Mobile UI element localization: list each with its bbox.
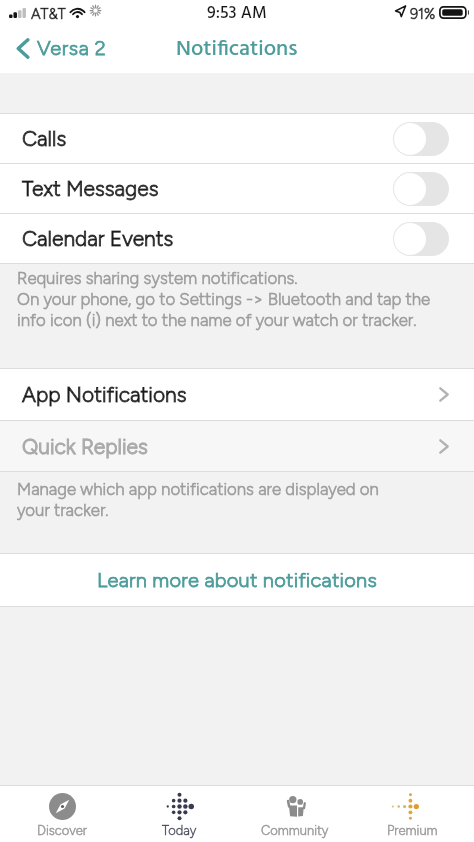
staticText: 91% <box>410 5 436 22</box>
button[interactable]: Calendar Events <box>0 214 474 263</box>
staticText: Requires sharing system notifications. O… <box>17 268 431 330</box>
button[interactable]: Versa 2 <box>0 31 119 65</box>
staticText: Notifications <box>176 32 298 67</box>
staticText: Requires sharing system notifications. O… <box>17 268 431 330</box>
staticText: AT&T <box>31 5 66 22</box>
staticText: Versa 2 <box>37 36 107 60</box>
staticText: AT&T <box>31 5 66 22</box>
staticText: Manage which app notifications are displ… <box>17 479 379 520</box>
staticText: Community <box>261 823 329 839</box>
staticText: Premium <box>387 823 438 839</box>
staticText: Text Messages <box>22 176 159 201</box>
staticText: Learn more about notifications <box>97 568 378 592</box>
button[interactable]: Text Messages <box>0 164 474 213</box>
staticText: Manage which app notifications are displ… <box>17 479 379 520</box>
staticText: 91% <box>410 5 436 22</box>
staticText: Calendar Events <box>22 226 174 251</box>
staticText: Calls <box>22 126 67 151</box>
staticText: Community <box>261 823 329 839</box>
staticText: App Notifications <box>22 382 187 407</box>
staticText: Today <box>162 823 197 839</box>
staticText: Text Messages <box>22 176 159 201</box>
staticText: App Notifications <box>22 382 187 407</box>
staticText: Learn more about notifications <box>97 568 378 592</box>
staticText: Quick Replies <box>22 434 148 459</box>
button[interactable]: App Notifications <box>0 369 474 420</box>
staticText: Discover <box>37 823 87 839</box>
staticText: 9:53 AM <box>207 0 267 27</box>
staticText: Calendar Events <box>22 226 174 251</box>
button[interactable]: Discover <box>7 786 117 839</box>
button[interactable]: Today <box>124 786 234 839</box>
staticText: Today <box>162 823 197 839</box>
button[interactable]: Learn more about notifications <box>0 554 474 606</box>
button[interactable]: Premium <box>357 786 467 839</box>
staticText: Premium <box>387 823 438 839</box>
staticText: Discover <box>37 823 87 839</box>
button[interactable]: Community <box>240 786 350 839</box>
button[interactable]: Calls <box>0 114 474 163</box>
staticText: Versa 2 <box>37 36 107 60</box>
staticText: Calls <box>22 126 67 151</box>
staticText: Quick Replies <box>22 434 148 459</box>
button[interactable]: Quick Replies <box>0 421 474 471</box>
